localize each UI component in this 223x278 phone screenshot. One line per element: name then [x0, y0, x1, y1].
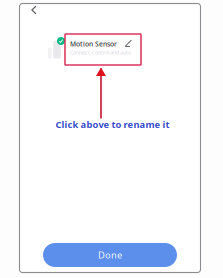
button[interactable]: Done — [43, 243, 177, 267]
staticText: Motion Sensor — [70, 39, 117, 48]
button[interactable]: Motion Sensor — [65, 34, 141, 65]
staticText: Click above to rename it — [55, 118, 169, 131]
staticText: Done — [98, 249, 122, 261]
staticText: Connect, control and auto — [70, 49, 131, 56]
button[interactable]: Back — [26, 2, 42, 18]
